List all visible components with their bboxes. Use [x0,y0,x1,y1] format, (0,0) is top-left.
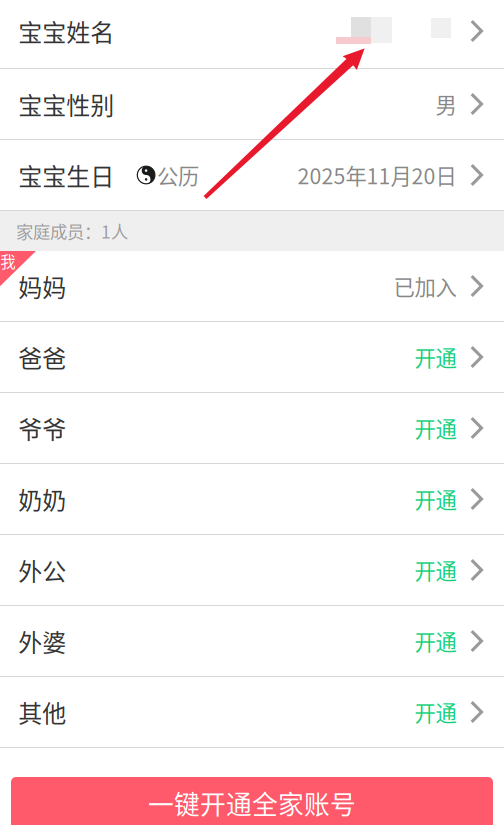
staticText: 外公 [18,553,66,587]
staticText: 爸爸 [18,340,66,374]
staticText: 我 [0,250,15,272]
button[interactable]: 爸爸 [0,322,504,393]
button[interactable]: 宝宝生日 [0,140,504,211]
button[interactable]: 宝宝姓名 [0,0,504,69]
button[interactable]: 奶奶 [0,464,504,535]
staticText: 开通 [414,626,456,656]
button[interactable]: 外公 [0,535,504,606]
staticText: 开通 [414,413,456,443]
staticText: 开通 [414,484,456,514]
staticText: 爷爷 [18,411,66,445]
button[interactable]: 一键开通全家账号 [11,777,493,825]
button[interactable]: 其他 [0,677,504,748]
button[interactable]: 宝宝性别 [0,69,504,140]
staticText: 开通 [414,342,456,372]
staticText: 2025年11月20日 [297,160,456,190]
staticText: 一键开通全家账号 [148,784,356,822]
button[interactable]: 爷爷 [0,393,504,464]
staticText: 妈妈 [18,269,66,303]
staticText: 家庭成员：1人 [16,218,128,244]
staticText: 奶奶 [18,482,66,516]
staticText: 公历 [157,160,199,190]
staticText: 宝宝性别 [18,87,114,121]
staticText: 开通 [414,555,456,585]
staticText: 宝宝生日 [18,158,114,192]
button[interactable]: 外婆 [0,606,504,677]
staticText: 男 [435,89,456,119]
staticText: 开通 [414,697,456,727]
staticText: 其他 [18,695,66,729]
button[interactable]: 妈妈 [0,251,504,322]
staticText: 外婆 [18,624,66,658]
staticText: 已加入 [393,271,456,301]
staticText: 宝宝姓名 [18,14,114,48]
